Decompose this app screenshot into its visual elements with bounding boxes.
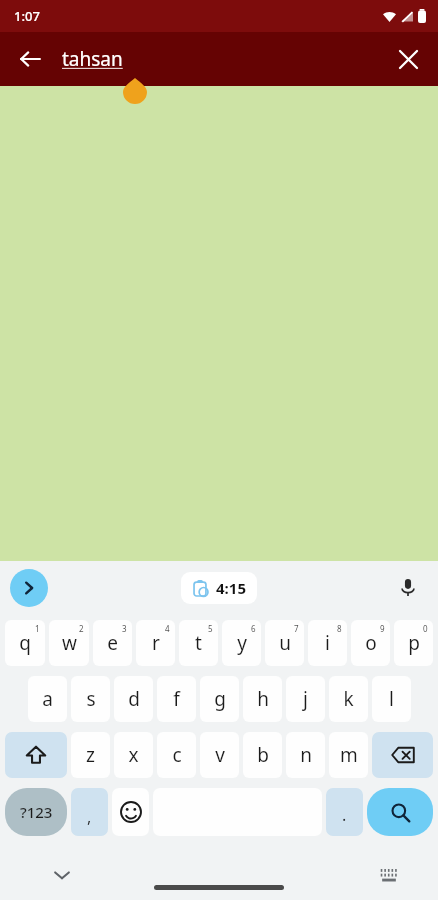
staticText: i: [325, 630, 330, 656]
button[interactable]: ,: [71, 788, 108, 836]
button[interactable]: e: [93, 620, 132, 666]
button[interactable]: Clear: [386, 37, 430, 81]
staticText: s: [86, 686, 96, 712]
button[interactable]: s: [71, 676, 110, 722]
staticText: 1:07: [14, 7, 40, 25]
staticText: k: [343, 686, 354, 712]
staticText: v: [215, 742, 225, 768]
staticText: a: [42, 686, 53, 712]
button[interactable]: Search: [367, 788, 433, 836]
staticText: 3: [122, 623, 127, 634]
staticText: u: [279, 630, 291, 656]
button[interactable]: .: [326, 788, 363, 836]
staticText: w: [62, 630, 77, 656]
staticText: x: [128, 742, 139, 768]
staticText: r: [152, 630, 160, 656]
button[interactable]: tahsan: [62, 46, 368, 72]
button[interactable]: y: [222, 620, 261, 666]
staticText: o: [365, 630, 377, 656]
button[interactable]: r: [136, 620, 175, 666]
staticText: 2: [79, 623, 84, 634]
button[interactable]: o: [351, 620, 390, 666]
button[interactable]: c: [157, 732, 196, 778]
button[interactable]: i: [308, 620, 347, 666]
button[interactable]: Emoji: [112, 788, 149, 836]
staticText: b: [257, 742, 269, 768]
button[interactable]: t: [179, 620, 218, 666]
staticText: 9: [380, 623, 385, 634]
button[interactable]: n: [286, 732, 325, 778]
staticText: 1: [35, 623, 40, 634]
button[interactable]: Hide keyboard: [42, 855, 82, 895]
button[interactable]: v: [200, 732, 239, 778]
staticText: c: [172, 742, 182, 768]
staticText: 6: [251, 623, 256, 634]
staticText: d: [128, 686, 140, 712]
button[interactable]: m: [329, 732, 368, 778]
button[interactable]: u: [265, 620, 304, 666]
staticText: 7: [294, 623, 299, 634]
button[interactable]: p: [394, 620, 433, 666]
staticText: 0: [423, 623, 428, 634]
button[interactable]: ?123: [5, 788, 67, 836]
button[interactable]: 4:15: [192, 578, 246, 598]
staticText: e: [107, 630, 118, 656]
staticText: y: [237, 630, 247, 656]
button[interactable]: f: [157, 676, 196, 722]
staticText: ?123: [20, 802, 53, 822]
staticText: f: [173, 686, 180, 712]
button[interactable]: d: [114, 676, 153, 722]
button[interactable]: a: [28, 676, 67, 722]
button[interactable]: h: [243, 676, 282, 722]
button[interactable]: b: [243, 732, 282, 778]
staticText: h: [257, 686, 269, 712]
staticText: z: [86, 742, 95, 768]
staticText: q: [19, 630, 31, 656]
staticText: 4:15: [216, 578, 246, 598]
staticText: p: [408, 630, 420, 656]
staticText: m: [340, 742, 358, 768]
staticText: g: [214, 686, 226, 712]
staticText: t: [195, 630, 202, 656]
button[interactable]: Expand suggestions: [10, 569, 48, 607]
staticText: 8: [337, 623, 342, 634]
button[interactable]: q: [5, 620, 45, 666]
button[interactable]: Shift: [5, 732, 67, 778]
button[interactable]: g: [200, 676, 239, 722]
staticText: l: [389, 686, 394, 712]
staticText: j: [303, 686, 308, 712]
button[interactable]: w: [49, 620, 89, 666]
button[interactable]: Voice input: [390, 570, 426, 606]
button[interactable]: Backspace: [372, 732, 433, 778]
staticText: n: [300, 742, 312, 768]
staticText: ,: [87, 806, 92, 828]
button[interactable]: Change keyboard: [370, 856, 408, 894]
button[interactable]: Back: [8, 37, 52, 81]
staticText: 5: [208, 623, 213, 634]
button[interactable]: j: [286, 676, 325, 722]
button[interactable]: z: [71, 732, 110, 778]
button[interactable]: x: [114, 732, 153, 778]
staticText: 4: [165, 623, 170, 634]
button[interactable]: l: [372, 676, 411, 722]
staticText: tahsan: [62, 46, 123, 72]
staticText: .: [342, 804, 347, 826]
button[interactable]: k: [329, 676, 368, 722]
